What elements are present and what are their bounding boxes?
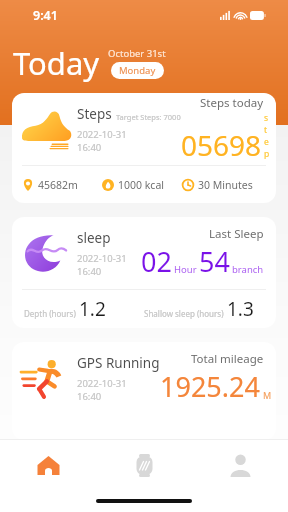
button[interactable]: Device	[96, 440, 192, 490]
staticText: 16:40	[77, 390, 102, 403]
staticText: 1.3	[227, 296, 254, 322]
staticText: 2022-10-31	[77, 252, 127, 265]
button[interactable]: Profile	[192, 440, 288, 490]
staticText: Total mileage	[191, 351, 264, 367]
staticText: Target Steps: 7000	[116, 112, 181, 122]
button[interactable]: Home	[0, 440, 96, 490]
staticText: 1000 kcal	[118, 178, 165, 192]
staticText: Shallow sleep (hours)	[144, 308, 224, 319]
button[interactable]: sleep	[12, 217, 276, 328]
staticText: 16:40	[77, 141, 102, 154]
staticText: branch	[232, 263, 264, 276]
staticText: 2022-10-31	[77, 377, 127, 390]
staticText: 9:41	[33, 7, 58, 24]
staticText: M	[263, 389, 264, 401]
staticText: Last Sleep	[209, 226, 264, 242]
staticText: Steps today	[200, 95, 264, 111]
staticText: 05698	[181, 126, 262, 164]
staticText: GPS Running	[77, 354, 160, 372]
button[interactable]: GPS Running	[12, 342, 276, 440]
staticText: 1.2	[79, 296, 106, 322]
staticText: Depth (hours)	[24, 308, 76, 319]
staticText: Steps	[77, 105, 112, 123]
staticText: 02	[141, 243, 172, 280]
staticText: 45682m	[38, 178, 78, 192]
staticText: 30 Minutes	[198, 178, 253, 192]
staticText: Monday	[119, 64, 156, 77]
staticText: Hour	[174, 263, 197, 276]
staticText: sleep	[77, 229, 111, 247]
staticText: 2022-10-31	[77, 128, 127, 141]
staticText: 54	[199, 243, 230, 280]
staticText: Today	[13, 42, 100, 84]
staticText: 1925.24	[160, 368, 260, 405]
staticText: October 31st	[108, 47, 166, 60]
staticText: 16:40	[77, 265, 102, 278]
button[interactable]: Steps	[12, 93, 276, 203]
